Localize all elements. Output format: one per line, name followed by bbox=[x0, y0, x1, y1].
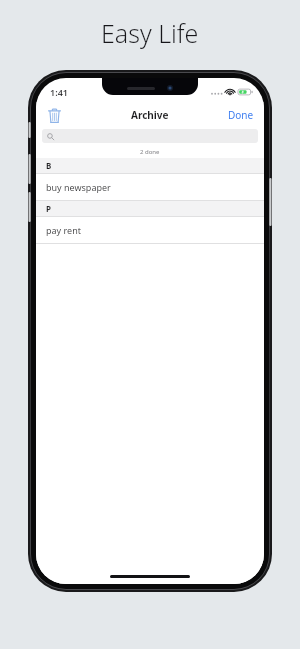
button[interactable]: pay rent bbox=[36, 217, 264, 243]
staticText: 1:41 bbox=[50, 86, 68, 98]
staticText: Done bbox=[228, 108, 254, 122]
staticText: B bbox=[46, 160, 52, 171]
button[interactable]: Delete all bbox=[42, 103, 66, 127]
staticText: P bbox=[46, 203, 51, 214]
button[interactable]: buy newspaper bbox=[36, 174, 264, 200]
staticText: Archive bbox=[131, 108, 169, 122]
button[interactable]: Done bbox=[218, 104, 264, 126]
staticText: 2 done bbox=[140, 148, 160, 156]
button[interactable] bbox=[42, 129, 258, 143]
staticText: buy newspaper bbox=[46, 181, 111, 193]
staticText: Easy Life bbox=[101, 16, 199, 50]
staticText: pay rent bbox=[46, 224, 81, 236]
